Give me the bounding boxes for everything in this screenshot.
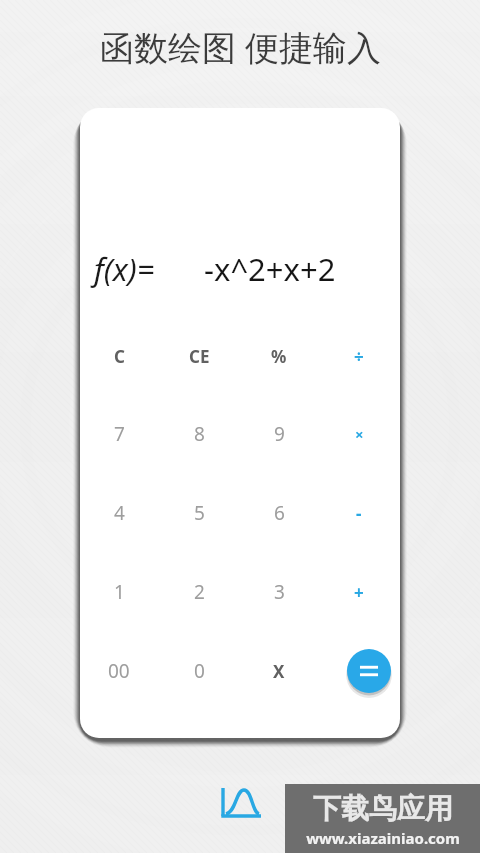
staticText: + bbox=[354, 581, 364, 604]
staticText: 下载鸟应用 bbox=[313, 791, 453, 826]
staticText: × bbox=[355, 424, 364, 444]
staticText: 2 bbox=[194, 579, 205, 605]
staticText: 5 bbox=[194, 500, 205, 526]
staticText: 3 bbox=[274, 579, 285, 605]
staticText: 00 bbox=[108, 658, 130, 684]
button[interactable]: 4 bbox=[80, 487, 158, 539]
staticText: 函数绘图 便捷输入 bbox=[100, 24, 381, 70]
button[interactable]: 2 bbox=[160, 566, 238, 618]
staticText: 1 bbox=[114, 579, 125, 605]
staticText: C bbox=[114, 345, 125, 368]
button[interactable]: 5 bbox=[160, 487, 238, 539]
button[interactable]: 9 bbox=[240, 408, 318, 460]
button[interactable]: Function graph bbox=[215, 782, 265, 826]
staticText: - bbox=[356, 502, 362, 525]
button[interactable]: X bbox=[240, 645, 318, 697]
button[interactable]: + bbox=[320, 566, 398, 618]
button[interactable]: 7 bbox=[80, 408, 158, 460]
staticText: 8 bbox=[194, 421, 205, 447]
staticText: X bbox=[273, 660, 285, 683]
staticText: ÷ bbox=[354, 345, 364, 368]
button[interactable]: × bbox=[320, 408, 398, 460]
button[interactable]: 3 bbox=[240, 566, 318, 618]
staticText: f(x)= bbox=[94, 248, 155, 290]
button[interactable]: Equals bbox=[347, 649, 391, 693]
staticText: 6 bbox=[274, 500, 285, 526]
staticText: -x^2+x+2 bbox=[204, 248, 336, 290]
button[interactable]: CE bbox=[160, 330, 238, 382]
button[interactable]: 0 bbox=[160, 645, 238, 697]
staticText: www.xiazainiao.com bbox=[306, 828, 460, 848]
button[interactable]: 6 bbox=[240, 487, 318, 539]
button[interactable]: 1 bbox=[80, 566, 158, 618]
button[interactable]: ÷ bbox=[320, 330, 398, 382]
button[interactable]: 00 bbox=[80, 645, 158, 697]
button[interactable]: C bbox=[80, 330, 158, 382]
staticText: 4 bbox=[114, 500, 125, 526]
button[interactable]: 8 bbox=[160, 408, 238, 460]
staticText: CE bbox=[189, 345, 210, 368]
staticText: 9 bbox=[274, 421, 285, 447]
staticText: 7 bbox=[114, 421, 125, 447]
button[interactable]: % bbox=[240, 330, 318, 382]
button[interactable]: - bbox=[320, 487, 398, 539]
staticText: % bbox=[271, 345, 287, 368]
staticText: 0 bbox=[194, 658, 205, 684]
